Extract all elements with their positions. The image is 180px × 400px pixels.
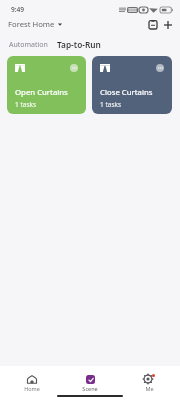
staticText: Open Curtains bbox=[15, 87, 68, 98]
staticText: Forest Home bbox=[8, 19, 55, 29]
button[interactable]: Forest Home bbox=[8, 19, 62, 29]
button[interactable]: Scene bbox=[63, 373, 117, 393]
button[interactable]: Me bbox=[122, 373, 176, 393]
button[interactable]: Automation bbox=[8, 38, 49, 52]
staticText: Tap-to-Run bbox=[57, 39, 101, 50]
button[interactable]: More options bbox=[70, 64, 78, 72]
button[interactable]: More options bbox=[7, 56, 86, 114]
staticText: 9:49 bbox=[11, 5, 25, 14]
staticText: 1 tasks bbox=[100, 100, 122, 109]
button[interactable]: Tap-to-Run bbox=[56, 37, 102, 52]
staticText: Scene bbox=[82, 385, 98, 392]
staticText: Me bbox=[145, 385, 154, 392]
button[interactable]: Logs bbox=[145, 17, 160, 32]
button[interactable]: Add bbox=[160, 17, 175, 32]
button[interactable]: More options bbox=[92, 56, 172, 114]
staticText: Close Curtains bbox=[100, 87, 153, 98]
staticText: Automation bbox=[9, 40, 48, 50]
staticText: Home bbox=[24, 385, 40, 392]
button[interactable]: More options bbox=[156, 64, 164, 72]
button[interactable]: Home bbox=[5, 373, 59, 393]
staticText: 1 tasks bbox=[15, 100, 37, 109]
